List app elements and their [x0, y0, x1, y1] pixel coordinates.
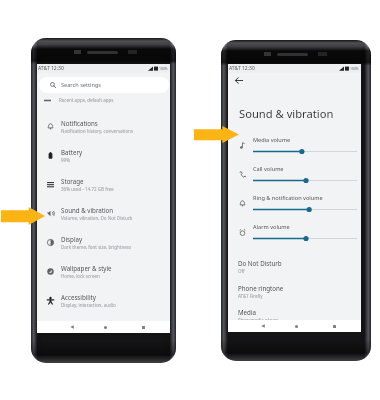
button[interactable]: Wallpaper & style	[37, 264, 170, 290]
button[interactable]: Ring & notification volume	[228, 194, 361, 220]
staticText: Wallpaper & style	[61, 264, 112, 272]
staticText: Sound & vibration	[239, 106, 334, 121]
button[interactable]: Back	[65, 321, 79, 333]
staticText: Phone ringtone	[238, 284, 284, 292]
staticText: Accessibility	[61, 293, 96, 301]
staticText: AT&T Firefly	[238, 293, 263, 299]
staticText: Notification history, conversations	[61, 128, 134, 134]
button[interactable]: Display	[37, 235, 170, 261]
button[interactable]: Recent apps	[136, 321, 150, 333]
button[interactable]: Do Not Disturb	[228, 259, 361, 281]
staticText: Volume, vibration, Do Not Disturb	[61, 215, 133, 221]
staticText: Battery	[61, 148, 83, 156]
button[interactable]: Sound & vibration	[37, 206, 170, 232]
staticText: Off	[238, 268, 245, 274]
staticText: AT&T 12:30	[38, 65, 64, 72]
button[interactable]: Home	[289, 320, 303, 332]
staticText: Media	[238, 308, 256, 316]
staticText: Do Not Disturb	[238, 259, 282, 267]
button[interactable]: Phone ringtone	[228, 284, 361, 306]
staticText: Recent apps, default apps	[59, 97, 114, 103]
staticText: Storage	[61, 177, 84, 185]
staticText: 100%	[350, 66, 359, 71]
staticText: Alarm volume	[253, 223, 290, 231]
button[interactable]: Media	[228, 308, 361, 330]
staticText: Media volume	[253, 136, 291, 144]
staticText: Search settings	[61, 81, 102, 89]
button[interactable]: Recent apps	[327, 320, 341, 332]
staticText: 100%	[159, 66, 168, 71]
staticText: Notifications	[61, 119, 98, 127]
button[interactable]: Call volume	[228, 165, 361, 191]
staticText: Sound & vibration	[61, 206, 114, 214]
button[interactable]: Home	[98, 321, 112, 333]
button[interactable]: Storage	[37, 177, 170, 203]
staticText: 36% used - 14.72 GB free	[61, 186, 114, 192]
staticText: Display	[61, 235, 83, 243]
button[interactable]: Back	[233, 74, 245, 86]
staticText: Ring & notification volume	[253, 194, 323, 202]
staticText: AT&T 12:30	[229, 65, 255, 72]
button[interactable]: Recent apps, default apps	[44, 97, 176, 106]
staticText: Call volume	[253, 165, 284, 173]
button[interactable]: Notifications	[37, 119, 170, 145]
button[interactable]: Accessibility	[37, 293, 170, 319]
button[interactable]: Alarm volume	[228, 223, 361, 249]
button[interactable]: Search settings	[39, 77, 169, 93]
button[interactable]: Back	[256, 320, 270, 332]
staticText: Home, lock screen	[61, 273, 100, 279]
staticText: Dark theme, font size, brightness	[61, 244, 132, 250]
staticText: Display, interaction, audio	[61, 302, 116, 308]
button[interactable]: Battery	[37, 148, 170, 174]
staticText: Show media player	[238, 317, 279, 323]
staticText: 99%	[61, 157, 70, 163]
button[interactable]: Media volume	[228, 136, 361, 162]
